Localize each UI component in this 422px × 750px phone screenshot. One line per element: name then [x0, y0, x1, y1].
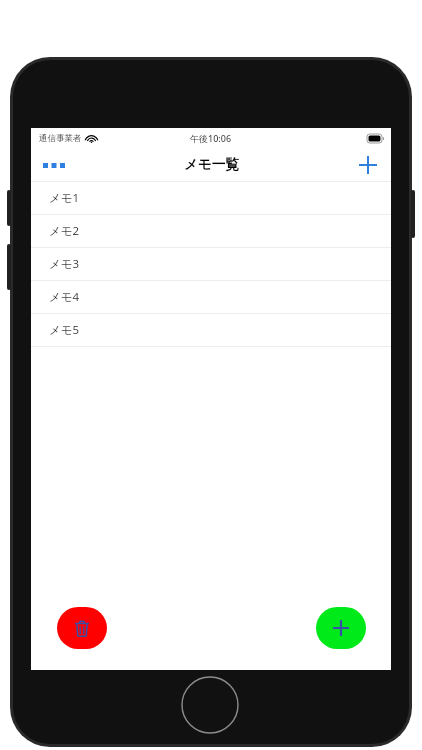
staticText: メモ4	[49, 289, 80, 305]
staticText: メモ一覧	[184, 156, 239, 173]
button[interactable]: Add memo	[316, 607, 366, 649]
staticText: 午後10:06	[190, 132, 232, 144]
staticText: 通信事業者	[39, 133, 82, 144]
button[interactable]: More options	[31, 150, 77, 180]
button[interactable]: メモ2	[31, 215, 391, 247]
button[interactable]: メモ5	[31, 314, 391, 346]
staticText: メモ3	[49, 256, 80, 272]
staticText: メモ2	[49, 223, 80, 239]
staticText: メモ1	[49, 190, 80, 206]
button[interactable]: New memo	[345, 150, 391, 180]
button[interactable]: メモ1	[31, 182, 391, 214]
button[interactable]: メモ4	[31, 281, 391, 313]
button[interactable]: メモ3	[31, 248, 391, 280]
staticText: メモ5	[49, 322, 80, 338]
button[interactable]: Delete	[57, 607, 107, 649]
